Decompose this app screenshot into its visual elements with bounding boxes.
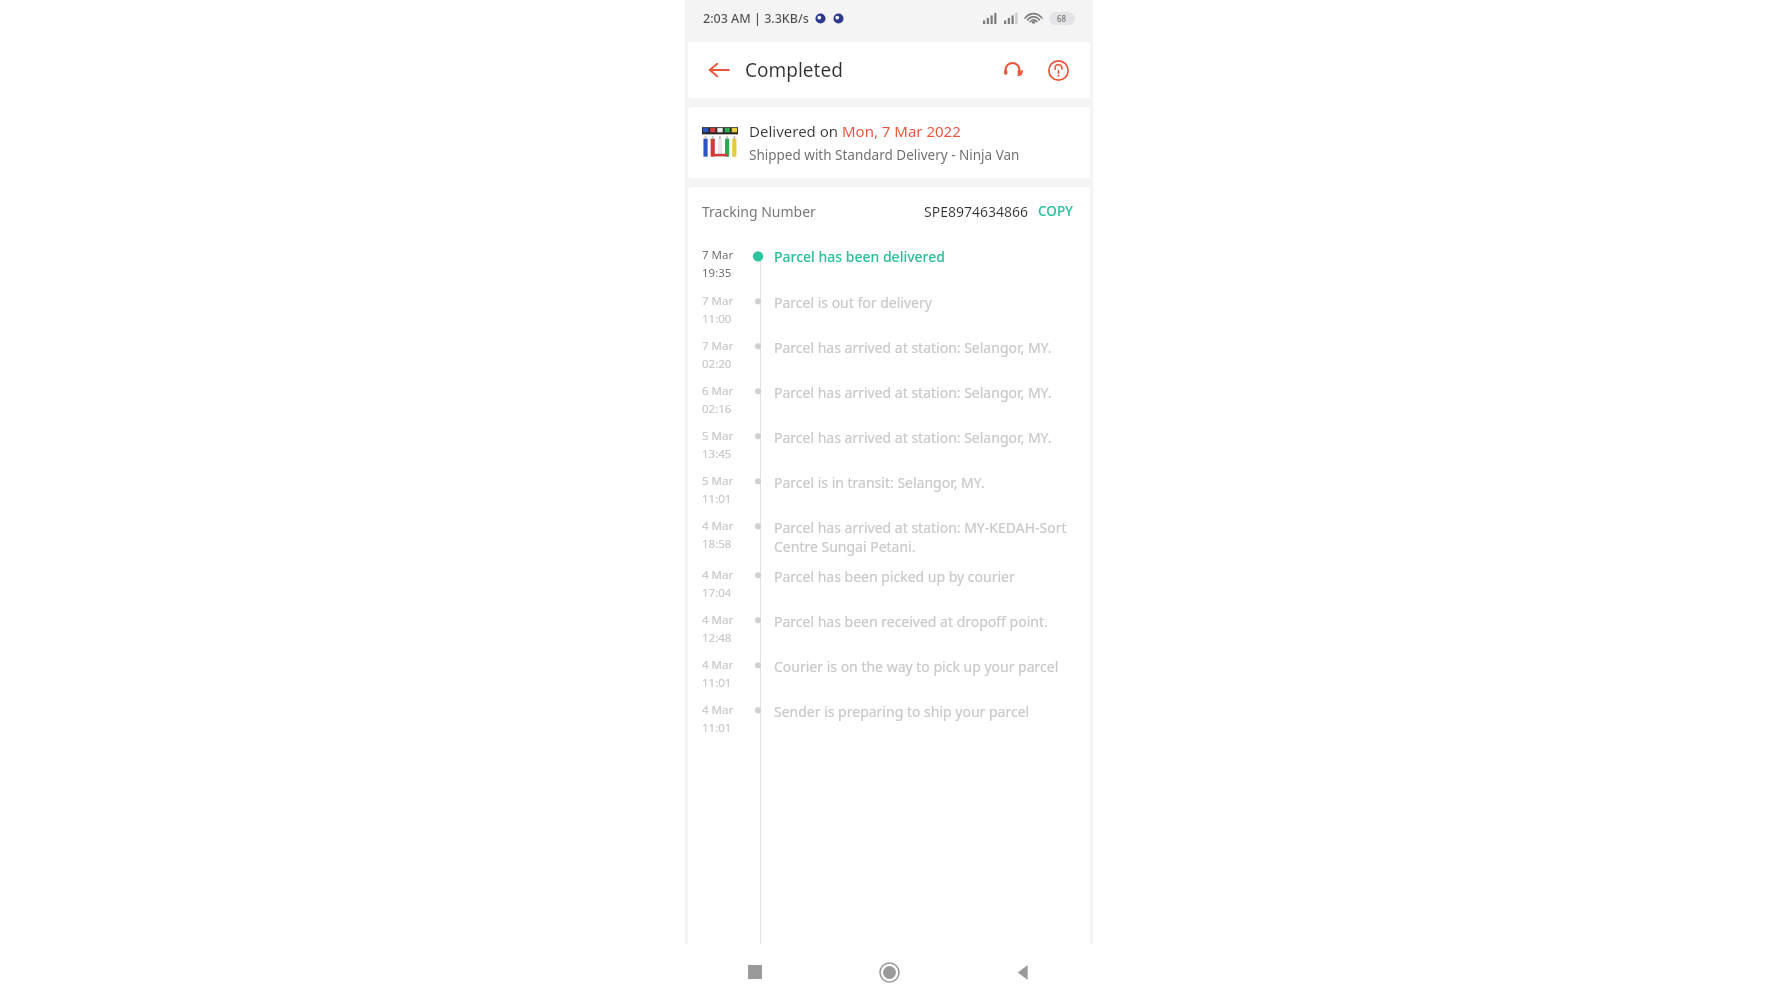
button[interactable]: Back: [702, 53, 736, 87]
staticText: 4 Mar: [702, 567, 734, 583]
staticText: 02:16: [702, 401, 732, 417]
staticText: 7 Mar: [702, 338, 734, 354]
button[interactable]: Recents: [727, 944, 783, 1000]
button[interactable]: Home: [861, 944, 917, 1000]
staticText: 11:01: [702, 491, 732, 507]
staticText: 68: [1057, 13, 1067, 24]
staticText: Parcel has arrived at station: Selangor,…: [774, 428, 1052, 447]
staticText: 02:20: [702, 356, 732, 372]
staticText: 4 Mar: [702, 612, 734, 628]
staticText: 5 Mar: [702, 428, 734, 444]
button[interactable]: Customer support: [994, 52, 1030, 88]
staticText: Parcel is out for delivery: [774, 293, 932, 312]
staticText: Tracking Number: [702, 202, 816, 221]
staticText: 18:58: [702, 536, 732, 552]
staticText: 4 Mar: [702, 518, 734, 534]
staticText: Parcel is in transit: Selangor, MY.: [774, 473, 985, 492]
staticText: 12:48: [702, 630, 732, 646]
button[interactable]: COPY: [1036, 200, 1076, 222]
staticText: Parcel has arrived at station: Selangor,…: [774, 338, 1052, 357]
staticText: Parcel has arrived at station: MY-KEDAH-…: [774, 518, 1076, 556]
staticText: 11:00: [702, 311, 732, 327]
button[interactable]: Delivered on Mon, 7 Mar 2022: [688, 107, 1090, 178]
staticText: Courier is on the way to pick up your pa…: [774, 657, 1059, 676]
staticText: 17:04: [702, 585, 732, 601]
staticText: Completed: [745, 57, 843, 83]
staticText: 2:03 AM | 3.3KB/s: [703, 10, 809, 27]
staticText: Delivered on Mon, 7 Mar 2022: [749, 121, 961, 141]
staticText: 7 Mar: [702, 293, 734, 309]
staticText: 4 Mar: [702, 702, 734, 718]
staticText: Sender is preparing to ship your parcel: [774, 702, 1030, 721]
staticText: Parcel has been picked up by courier: [774, 567, 1015, 586]
staticText: 5 Mar: [702, 473, 734, 489]
staticText: 11:01: [702, 720, 732, 736]
staticText: 4 Mar: [702, 657, 734, 673]
button[interactable]: Help: [1040, 52, 1076, 88]
staticText: Parcel has been received at dropoff poin…: [774, 612, 1048, 631]
staticText: 13:45: [702, 446, 732, 462]
staticText: SPE8974634866: [924, 202, 1029, 221]
staticText: Parcel has arrived at station: Selangor,…: [774, 383, 1052, 402]
staticText: 7 Mar: [702, 247, 734, 263]
button[interactable]: Back: [995, 944, 1051, 1000]
staticText: Parcel has been delivered: [774, 247, 945, 266]
staticText: 19:35: [702, 265, 732, 281]
staticText: 6 Mar: [702, 383, 734, 399]
staticText: COPY: [1038, 202, 1074, 220]
staticText: Shipped with Standard Delivery - Ninja V…: [749, 146, 1020, 164]
staticText: 11:01: [702, 675, 732, 691]
